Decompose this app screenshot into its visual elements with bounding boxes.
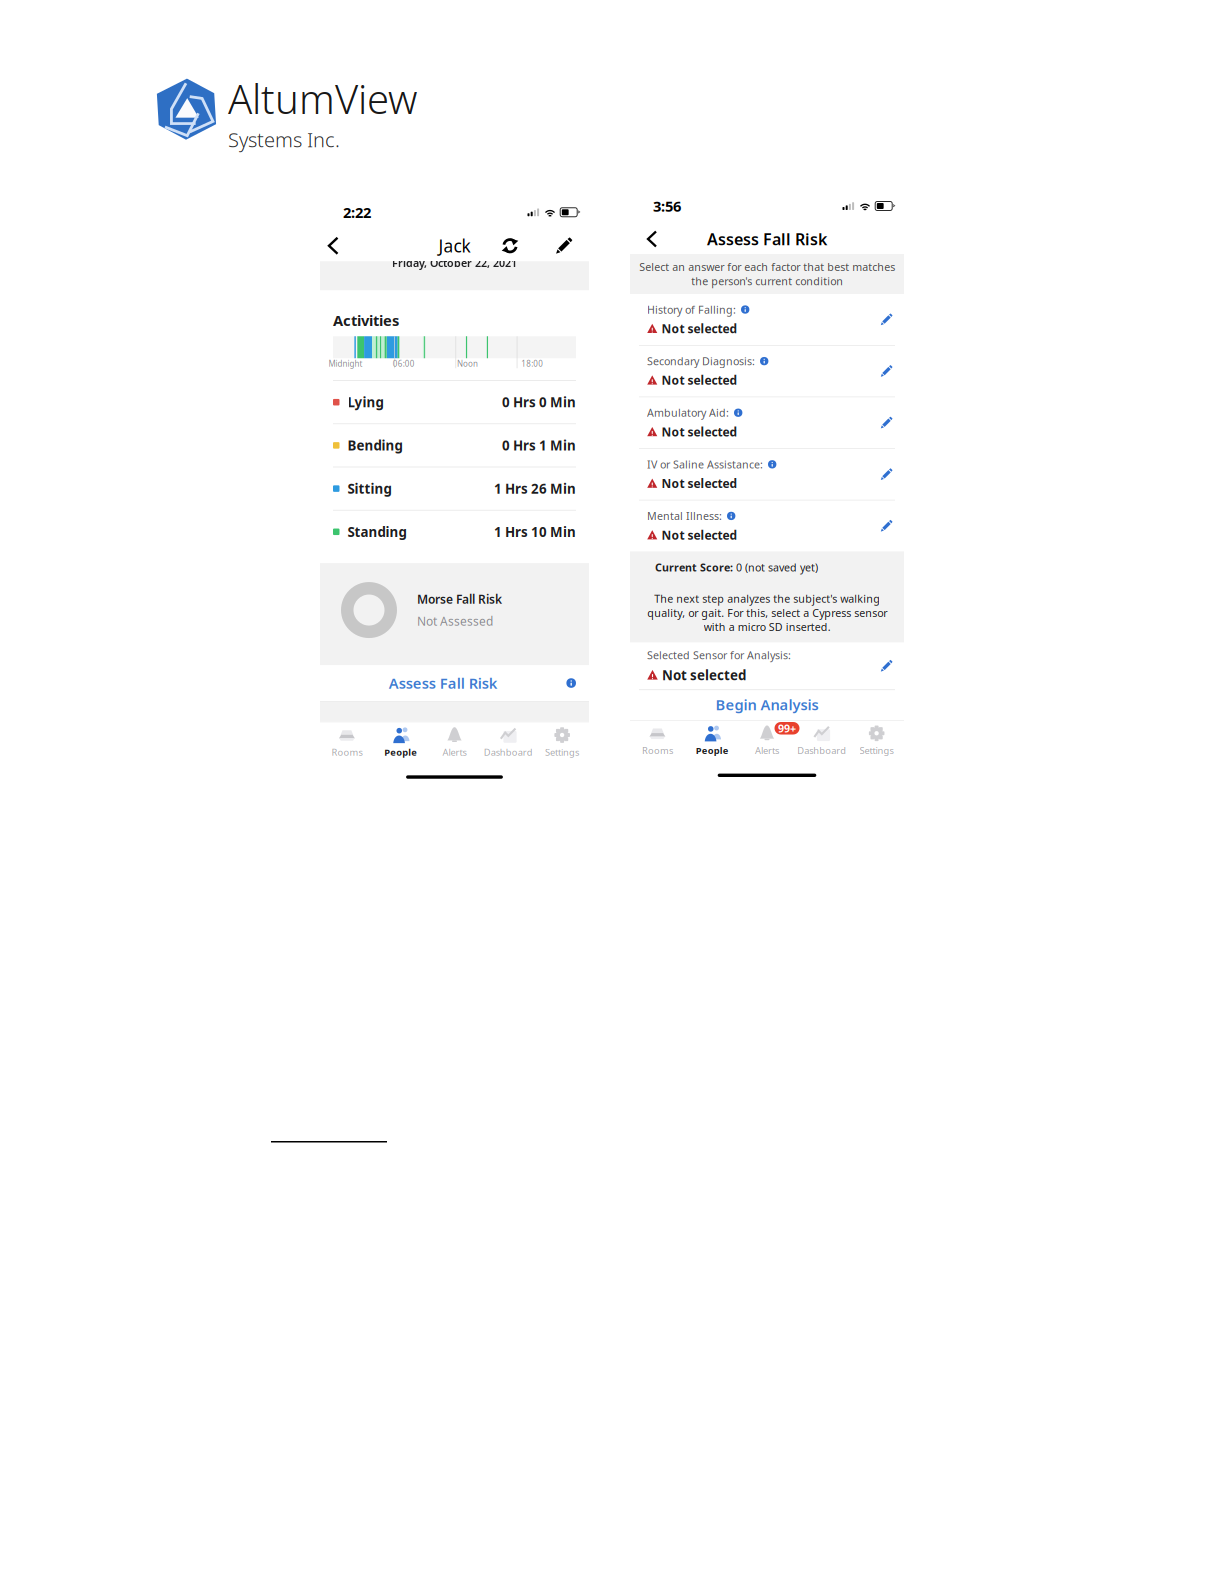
staticText: People [696,744,729,757]
staticText: Not selected [661,372,737,388]
staticText: 1 Hrs 26 Min [494,480,576,497]
staticText: Not selected [662,666,746,684]
button[interactable]: Edit [552,234,576,258]
staticText: Sitting [347,480,391,497]
staticText: Standing [347,523,406,541]
staticText: Not selected [661,321,737,336]
staticText: Not Assessed [417,613,493,629]
button[interactable]: Back [640,225,664,252]
button[interactable]: Back [324,231,342,261]
button[interactable]: IV or Saline Assistance: Not selected. E… [630,449,904,500]
button[interactable]: Assess Fall Risk [320,665,589,701]
button[interactable]: Dashboard [794,721,849,759]
staticText: Current Score: [655,560,733,575]
staticText: Midnight [328,358,362,369]
staticText: 3:56 [653,196,681,216]
staticText: Select an answer for each factor that be… [639,260,895,288]
button[interactable]: History of Falling: Not selected. Edit [630,294,904,345]
staticText: Selected Sensor for Analysis: [647,648,791,662]
staticText: Rooms [642,744,673,757]
button[interactable]: People [685,721,740,759]
staticText: Assess Fall Risk [707,228,827,250]
staticText: 06:00 [393,358,415,369]
button[interactable]: Ambulatory Aid: Not selected. Edit [630,397,904,448]
button[interactable]: Rooms [630,721,685,759]
staticText: Noon [457,358,478,369]
button[interactable]: Mental Illness: Not selected. Edit [630,500,904,551]
staticText: 2:22 [343,202,371,222]
staticText: 0 (not saved yet) [733,560,818,575]
staticText: Jack [438,234,470,257]
staticText: Begin Analysis [715,695,818,714]
staticText: Bending [347,436,402,454]
staticText: 99+ [778,721,796,735]
button[interactable]: Alerts [428,722,481,760]
staticText: IV or Saline Assistance: [647,457,763,471]
staticText: Alerts [755,744,779,757]
staticText: 1 Hrs 10 Min [494,523,576,541]
staticText: Dashboard [797,744,846,757]
staticText: The next step analyzes the subject's wal… [647,592,887,634]
staticText: Friday, October 22, 2021 [392,256,517,270]
staticText: Dashboard [484,746,533,758]
staticText: Not selected [661,527,737,543]
staticText: Settings [545,746,579,758]
staticText: Secondary Diagnosis: [647,354,755,368]
staticText: Not selected [661,475,737,491]
staticText: Not selected [661,424,737,440]
button[interactable]: Rooms [320,722,374,760]
staticText: Ambulatory Aid: [647,406,729,420]
staticText: Mental Illness: [647,509,722,523]
staticText: Systems Inc. [228,126,340,153]
staticText: 18:00 [521,358,543,369]
button[interactable]: People [374,722,428,760]
staticText: Alerts [442,746,466,758]
staticText: 0 Hrs 1 Min [502,436,576,454]
staticText: Rooms [331,746,362,758]
button[interactable]: Selected Sensor for Analysis: [630,642,904,689]
staticText: Activities [333,310,399,330]
staticText: Assess Fall Risk [389,673,498,693]
button[interactable]: Refresh [498,234,522,258]
button[interactable]: Begin Analysis [630,690,904,719]
button[interactable]: 99+ [740,721,794,759]
staticText: 0 Hrs 0 Min [502,393,576,411]
staticText: AltumView [228,72,417,125]
staticText: Morse Fall Risk [417,591,502,607]
button[interactable]: Settings [849,721,904,759]
staticText: History of Falling: [647,302,736,317]
button[interactable]: Dashboard [481,722,535,760]
staticText: Lying [347,393,383,411]
button[interactable]: Secondary Diagnosis: Not selected. Edit [630,346,904,397]
button[interactable]: Settings [535,722,589,760]
staticText: Settings [860,744,894,757]
staticText: People [384,746,417,758]
